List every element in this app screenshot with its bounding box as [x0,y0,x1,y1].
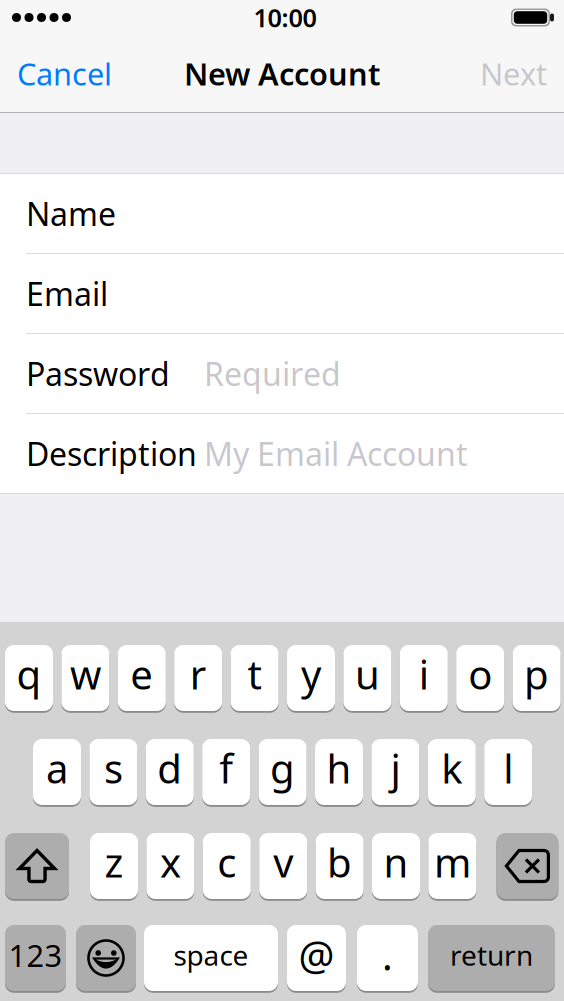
button[interactable]: o [456,643,504,713]
staticText: j [390,741,400,794]
staticText: Cancel [17,53,112,94]
staticText: h [326,741,351,794]
staticText: u [355,647,380,700]
button[interactable]: q [5,643,53,713]
button[interactable]: m [428,831,476,901]
staticText: My Email Account [204,432,468,475]
button[interactable]: c [203,831,251,901]
button[interactable]: y [287,643,335,713]
button[interactable]: Delete [496,831,558,901]
staticText: q [16,647,41,700]
button[interactable]: Description [0,414,564,493]
staticText: w [70,647,101,700]
staticText: r [190,647,207,700]
button[interactable]: . [357,923,418,993]
staticText: k [441,741,462,794]
staticText: y [301,647,321,700]
staticText: b [327,835,352,888]
button[interactable]: n [372,831,420,901]
button[interactable]: x [146,831,194,901]
button[interactable]: z [90,831,138,901]
button[interactable]: Emoji [76,923,136,993]
button[interactable]: t [231,643,279,713]
button[interactable]: j [371,737,419,807]
staticText: Email [26,272,108,315]
staticText: i [419,647,429,700]
button[interactable]: return [428,923,555,993]
staticText: . [382,928,393,981]
button[interactable]: e [118,643,166,713]
staticText: n [383,835,408,888]
staticText: f [219,741,233,794]
staticText: Next [480,53,547,94]
staticText: m [434,835,471,888]
staticText: g [270,741,295,794]
staticText: 123 [8,935,62,975]
button[interactable]: w [61,643,109,713]
button[interactable]: Email [0,254,564,333]
button[interactable]: v [259,831,307,901]
button[interactable]: d [146,737,194,807]
staticText: x [160,835,181,888]
button[interactable]: Next [463,35,564,112]
button[interactable]: k [428,737,476,807]
button[interactable]: s [89,737,137,807]
button[interactable]: 123 [5,923,66,993]
staticText: d [157,741,182,794]
button[interactable]: b [316,831,364,901]
staticText: v [273,835,293,888]
button[interactable]: r [174,643,222,713]
button[interactable]: h [315,737,363,807]
button[interactable]: @ [287,923,346,993]
staticText: 10:00 [253,1,316,34]
staticText: z [104,835,123,888]
button[interactable]: f [202,737,250,807]
button[interactable]: g [259,737,307,807]
staticText: Required [204,352,341,395]
button[interactable]: a [33,737,81,807]
staticText: New Account [184,53,380,94]
staticText: c [217,835,236,888]
button[interactable]: p [513,643,561,713]
button[interactable]: Shift [5,831,69,901]
button[interactable]: Name [0,174,564,253]
staticText: p [524,647,549,700]
button[interactable]: Password [0,334,564,413]
staticText: t [248,647,262,700]
button[interactable]: Cancel [0,35,129,112]
staticText: return [450,936,533,974]
staticText: @ [298,928,334,981]
staticText: Description [26,432,197,475]
staticText: o [468,647,492,700]
button[interactable]: space [144,923,278,993]
button[interactable]: l [484,737,532,807]
button[interactable]: u [343,643,391,713]
staticText: s [104,741,123,794]
button[interactable]: i [400,643,448,713]
staticText: space [173,936,248,974]
staticText: l [503,741,513,794]
staticText: Password [26,352,170,395]
staticText: Name [26,192,116,235]
staticText: e [130,647,153,700]
staticText: a [46,741,68,794]
